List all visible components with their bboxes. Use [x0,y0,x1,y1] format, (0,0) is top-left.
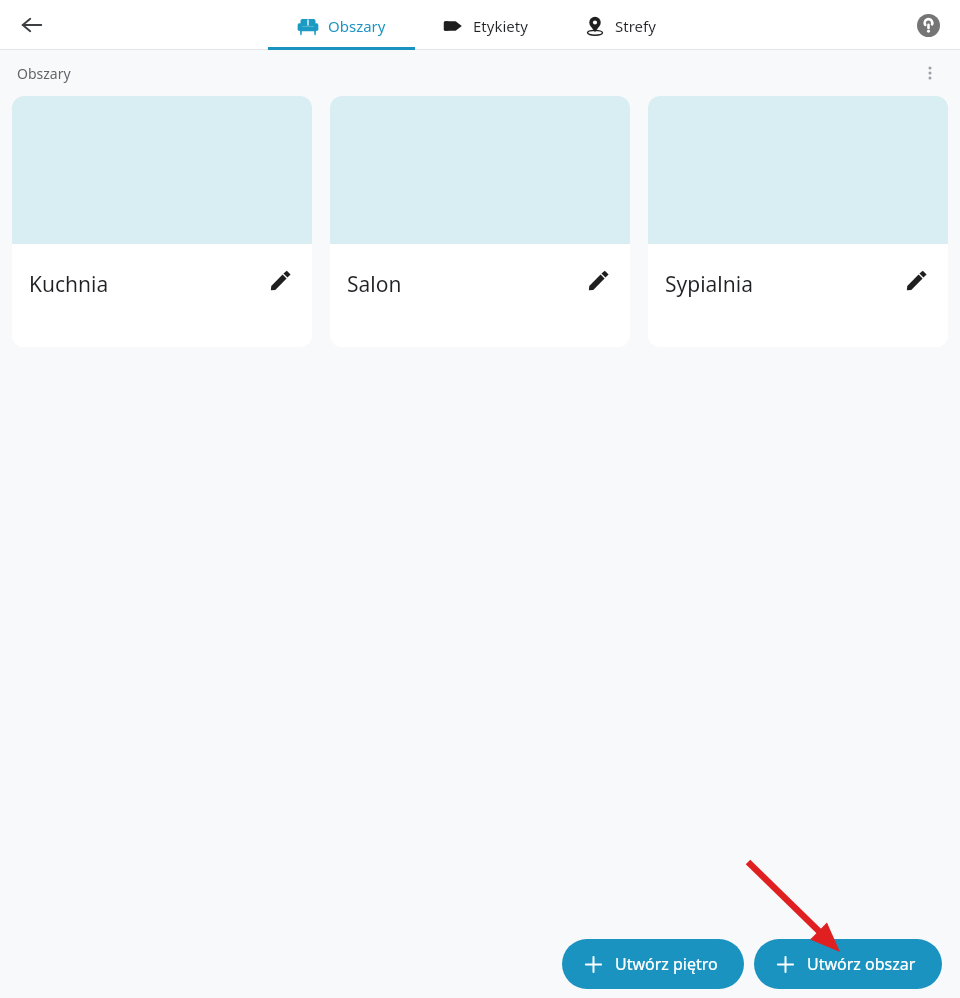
button[interactable]: Utwórz piętro [562,939,744,989]
staticText: Kuchnia [29,270,109,299]
button[interactable]: Sypialnia [648,96,948,347]
staticText: Etykiety [473,16,528,36]
staticText: Sypialnia [665,270,753,299]
button[interactable]: Utwórz obszar [754,939,942,989]
staticText: Salon [347,270,402,299]
button[interactable]: Edit Kuchnia [262,262,298,298]
button[interactable]: Obszary [268,1,415,50]
button[interactable]: Strefy [555,1,685,50]
staticText: Obszary [17,64,71,83]
button[interactable]: Back [12,5,52,45]
button[interactable]: Salon [330,96,630,347]
staticText: Utwórz obszar [807,953,916,975]
button[interactable]: Edit Salon [580,262,616,298]
button[interactable]: Etykiety [415,1,555,50]
button[interactable]: Help [908,5,948,45]
staticText: Strefy [615,16,656,36]
staticText: Utwórz piętro [615,953,718,975]
staticText: Obszary [328,16,386,36]
button[interactable]: More options [912,55,948,91]
button[interactable]: Edit Sypialnia [898,262,934,298]
button[interactable]: Kuchnia [12,96,312,347]
